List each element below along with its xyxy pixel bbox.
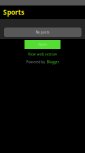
staticText: View web version xyxy=(28,52,57,56)
button[interactable]: Home xyxy=(24,40,60,49)
staticText: Blogger xyxy=(47,60,59,64)
button[interactable]: Blogger xyxy=(47,60,59,64)
staticText: No posts xyxy=(36,30,50,34)
button[interactable]: View web version xyxy=(28,49,57,56)
staticText: Sports xyxy=(3,8,24,17)
staticText: Powered by xyxy=(26,60,45,64)
staticText: Home xyxy=(38,42,47,47)
